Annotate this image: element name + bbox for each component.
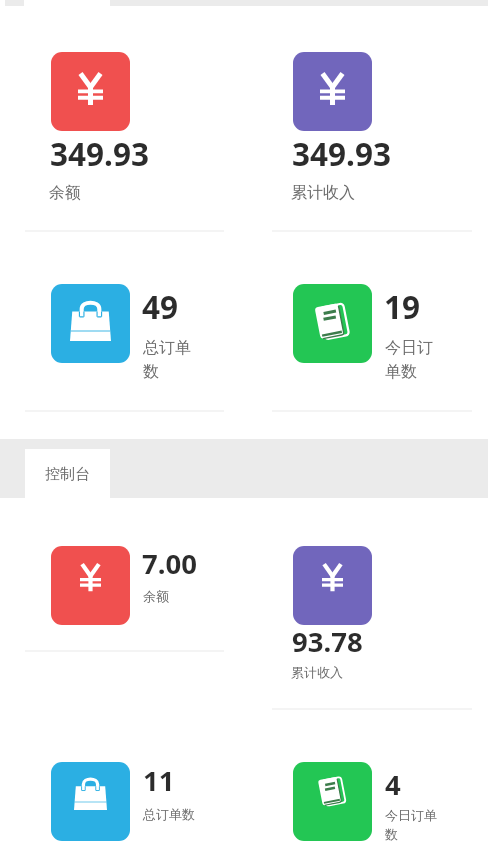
- button[interactable]: [293, 546, 372, 625]
- staticText: 49: [142, 285, 179, 328]
- staticText: 余额: [143, 588, 199, 604]
- staticText: 累计收入: [291, 183, 381, 203]
- staticText: 今日订单数: [385, 807, 441, 842]
- staticText: 349.93: [50, 132, 149, 175]
- staticText: 今日订单数: [385, 338, 441, 382]
- staticText: 余额: [49, 183, 139, 203]
- staticText: 11: [143, 762, 175, 799]
- staticText: 总订单数: [143, 806, 199, 822]
- staticText: 93.78: [292, 623, 363, 660]
- staticText: 累计收入: [291, 664, 381, 680]
- button[interactable]: [293, 762, 372, 841]
- staticText: 7.00: [142, 545, 197, 582]
- staticText: 19: [384, 285, 421, 328]
- button[interactable]: [51, 52, 130, 131]
- staticText: 控制台: [45, 465, 90, 484]
- button[interactable]: 控制台: [25, 449, 110, 499]
- button[interactable]: [51, 546, 130, 625]
- button[interactable]: [293, 52, 372, 131]
- button[interactable]: [51, 284, 130, 363]
- staticText: 总订单数: [143, 338, 199, 382]
- button[interactable]: [51, 762, 130, 841]
- button[interactable]: [293, 284, 372, 363]
- staticText: 349.93: [292, 132, 391, 175]
- staticText: 4: [385, 766, 401, 803]
